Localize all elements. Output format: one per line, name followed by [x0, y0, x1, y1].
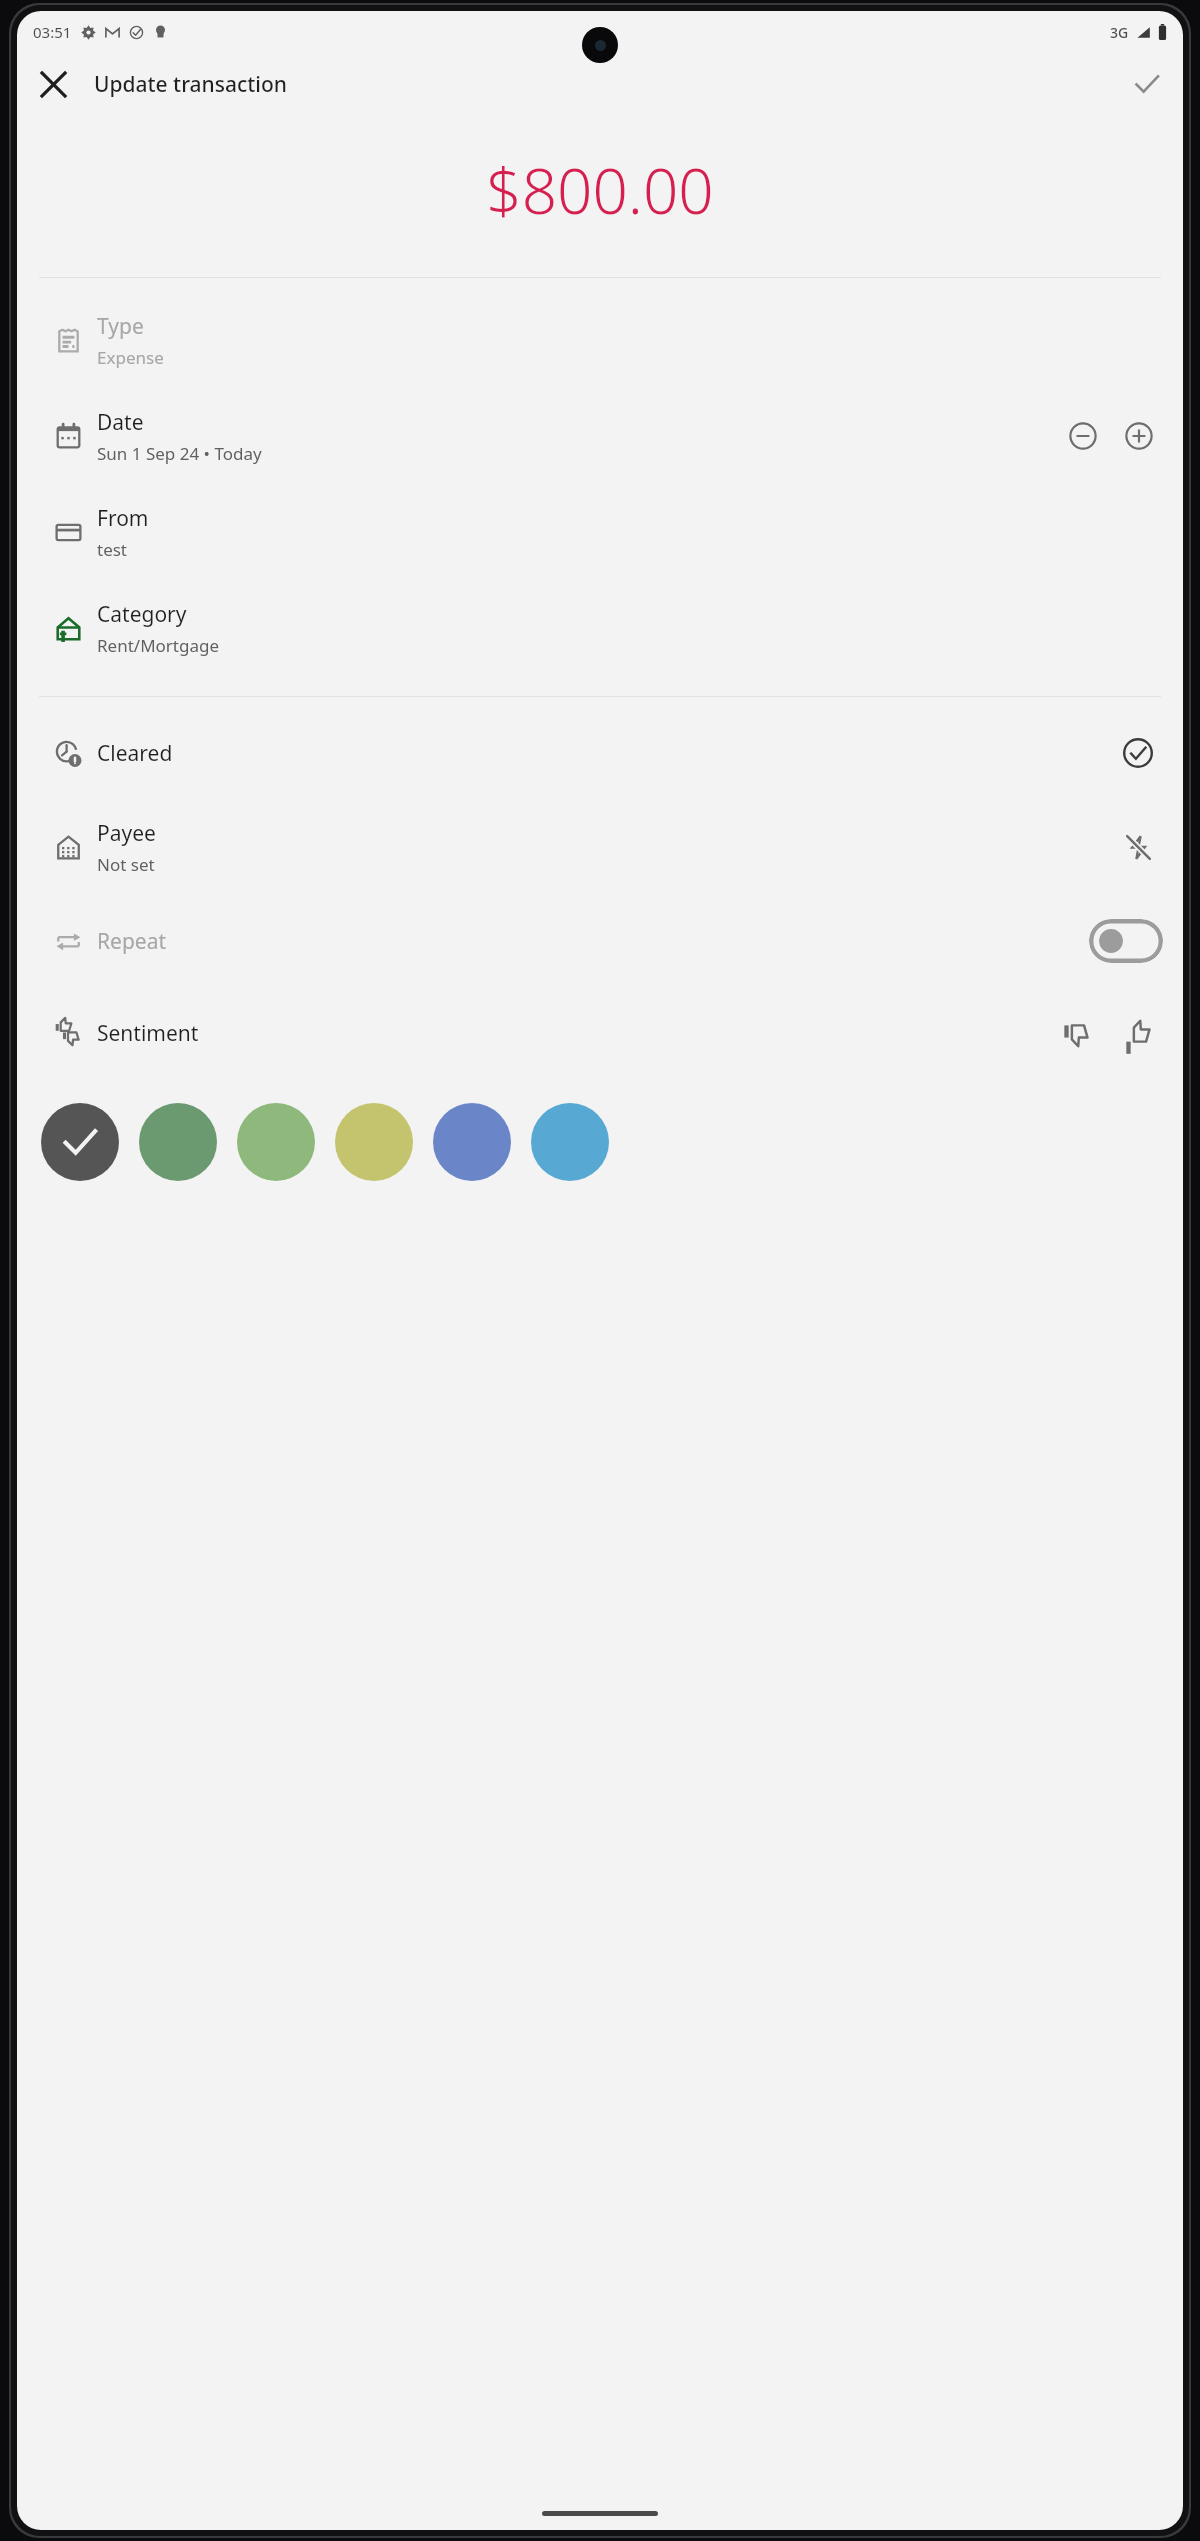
button[interactable]: Type: [17, 292, 1183, 388]
staticText: Expense: [97, 346, 164, 369]
staticText: Date: [97, 408, 144, 437]
staticText: test: [97, 538, 128, 561]
button[interactable]: Sentiment: [17, 987, 1183, 1079]
button[interactable]: Colour 0: [41, 1103, 119, 1181]
button[interactable]: Thumbs down: [1051, 1008, 1101, 1058]
button[interactable]: Thumbs up: [1113, 1008, 1163, 1058]
button[interactable]: From: [17, 484, 1183, 580]
button[interactable]: Cleared: [1113, 728, 1163, 778]
staticText: From: [97, 504, 149, 533]
staticText: $800.00: [486, 148, 714, 232]
button[interactable]: Auto payee off: [1113, 822, 1163, 872]
staticText: Sentiment: [97, 1019, 199, 1048]
button[interactable]: Repeat: [17, 895, 1183, 987]
staticText: Payee: [97, 819, 156, 848]
button[interactable]: Date: [17, 388, 1183, 484]
staticText: Update transaction: [94, 70, 288, 99]
staticText: Category: [97, 600, 187, 629]
button[interactable]: Save: [1123, 60, 1171, 108]
button[interactable]: Category: [17, 580, 1183, 676]
staticText: Rent/Mortgage: [97, 634, 220, 657]
staticText: 3G: [1110, 23, 1129, 42]
staticText: Repeat: [97, 927, 167, 956]
button[interactable]: Repeat toggle: [1089, 919, 1163, 963]
button[interactable]: Close: [29, 60, 77, 108]
button[interactable]: Cleared: [17, 707, 1183, 799]
button[interactable]: Colour 3: [335, 1103, 413, 1181]
button[interactable]: Payee: [17, 799, 1183, 895]
staticText: Not set: [97, 853, 155, 876]
button[interactable]: Previous day: [1059, 412, 1107, 460]
staticText: Cleared: [97, 739, 173, 768]
button[interactable]: Colour 5: [531, 1103, 609, 1181]
button[interactable]: $800.00: [17, 115, 1183, 265]
staticText: 03:51: [33, 22, 72, 42]
button[interactable]: Colour 1: [139, 1103, 217, 1181]
staticText: Type: [97, 312, 144, 341]
button[interactable]: Next day: [1115, 412, 1163, 460]
button[interactable]: Colour 4: [433, 1103, 511, 1181]
staticText: Sun 1 Sep 24 • Today: [97, 442, 262, 465]
button[interactable]: Colour 2: [237, 1103, 315, 1181]
